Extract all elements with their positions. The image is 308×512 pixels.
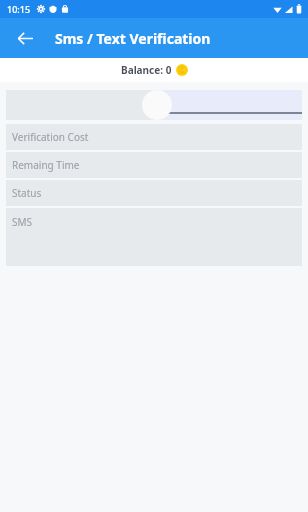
staticText: Verification Cost — [12, 130, 89, 144]
staticText: Balance: 0 — [121, 63, 172, 77]
staticText: Remaing Time — [12, 158, 80, 172]
staticText: Status — [12, 186, 42, 200]
staticText: SMS — [12, 215, 33, 229]
button[interactable]: Remaing Time — [6, 152, 302, 178]
button[interactable] — [6, 90, 151, 120]
button[interactable] — [151, 90, 302, 120]
other: Loading — [142, 90, 172, 120]
staticText: Sms / Text Verification — [55, 29, 211, 48]
button[interactable]: SMS — [6, 208, 302, 266]
button[interactable]: Verification Cost — [6, 124, 302, 150]
button[interactable]: Back — [8, 21, 42, 55]
staticText: 10:15 — [7, 3, 31, 15]
button[interactable]: Status — [6, 180, 302, 206]
